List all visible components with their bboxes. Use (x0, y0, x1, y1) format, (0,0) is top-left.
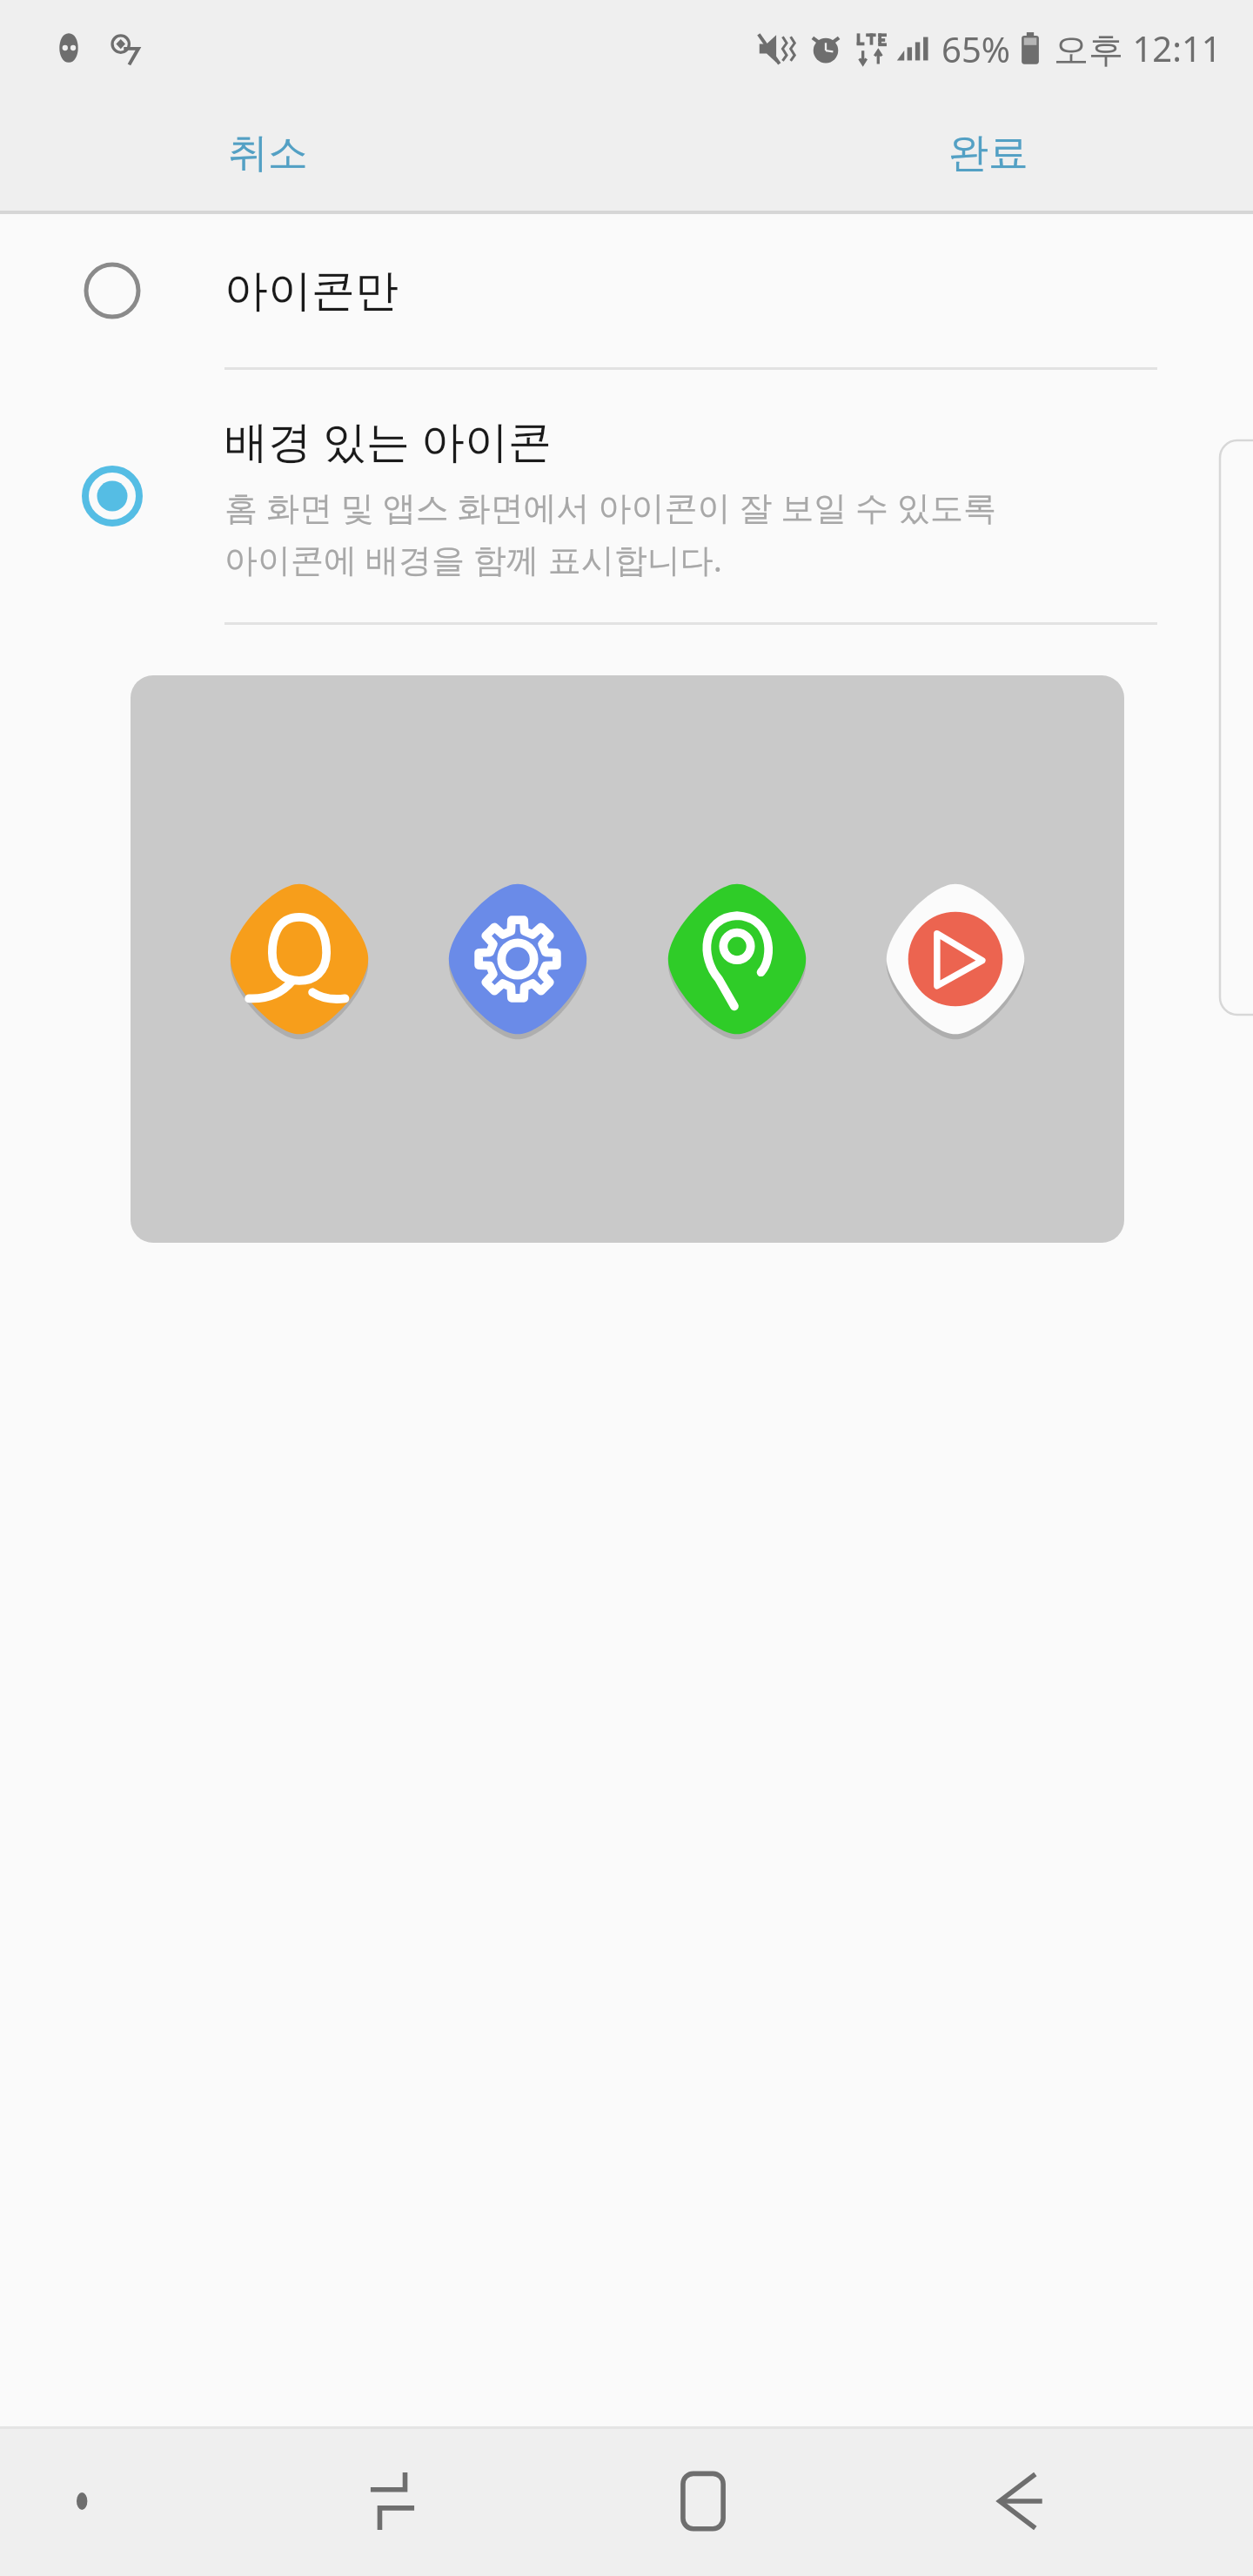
button[interactable]: Recents (314, 2440, 471, 2562)
button[interactable]: 배경 있는 아이콘 (0, 370, 1253, 622)
button[interactable]: Home (626, 2440, 783, 2562)
button[interactable]: 완료 (926, 116, 1051, 191)
staticText: 취소 (228, 128, 308, 178)
staticText: 홈 화면 및 앱스 화면에서 아이콘이 잘 보일 수 있도록 아이콘에 배경을 … (224, 484, 996, 581)
button[interactable]: App icon (878, 882, 1033, 1036)
button[interactable]: 취소 (205, 116, 331, 191)
staticText: 완료 (948, 128, 1029, 178)
button[interactable]: App icon (440, 882, 595, 1036)
button[interactable]: App icon (660, 882, 814, 1036)
staticText: 65% (941, 25, 1010, 72)
button[interactable]: Back (940, 2440, 1096, 2562)
button[interactable]: 아이콘만 (0, 214, 1253, 367)
button[interactable]: App icon (222, 882, 377, 1036)
staticText: 아이콘만 (224, 264, 399, 319)
button[interactable]: App icon (131, 675, 1124, 1243)
staticText: 오후 12:11 (1054, 24, 1222, 72)
button[interactable]: Menu indicator (61, 2477, 110, 2526)
staticText: 배경 있는 아이콘 (224, 411, 552, 470)
